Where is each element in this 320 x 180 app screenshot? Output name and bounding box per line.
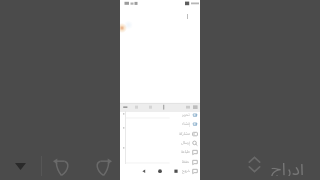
button[interactable]: تحرير: [168, 110, 198, 119]
button[interactable]: إدراج: [246, 152, 304, 176]
staticText: إنشاء: [182, 120, 190, 128]
button[interactable]: Undo: [52, 157, 71, 176]
button[interactable]: حفظ: [168, 157, 198, 166]
staticText: حفظ: [182, 158, 190, 166]
staticText: إدراج: [271, 152, 304, 176]
button[interactable]: مشاركة: [168, 129, 198, 138]
button[interactable]: طباعة: [168, 147, 198, 156]
button[interactable]: إنشاء: [168, 119, 198, 128]
staticText: إرسال: [181, 139, 190, 147]
button[interactable]: Redo: [94, 157, 113, 176]
button[interactable]: More options: [11, 157, 30, 176]
staticText: خروج: [182, 167, 190, 175]
button[interactable]: إرسال: [168, 138, 198, 147]
staticText: تحرير: [182, 111, 190, 119]
staticText: مشاركة: [179, 130, 190, 138]
button[interactable]: خروج: [168, 166, 198, 175]
staticText: طباعة: [181, 148, 190, 156]
